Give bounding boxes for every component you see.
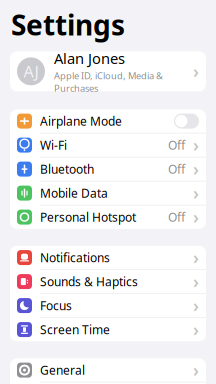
staticText: › xyxy=(193,182,199,205)
button[interactable]: Mobile Data xyxy=(10,181,206,205)
button[interactable]: Bluetooth xyxy=(10,157,206,181)
staticText: Notifications xyxy=(40,250,110,265)
button[interactable]: General xyxy=(10,358,206,382)
staticText: › xyxy=(193,246,199,269)
staticText: Off xyxy=(168,161,185,177)
button[interactable]: Personal Hotspot xyxy=(10,205,206,229)
staticText: › xyxy=(193,158,199,181)
staticText: Mobile Data xyxy=(40,185,108,201)
staticText: › xyxy=(193,134,199,157)
staticText: Off xyxy=(168,209,185,225)
button[interactable]: Screen Time xyxy=(10,318,206,341)
staticText: Apple ID, iCloud, Media & Purchases xyxy=(54,69,163,94)
button[interactable]: AJ xyxy=(0,51,216,91)
staticText: Alan Jones xyxy=(54,48,125,68)
button[interactable]: Control Centre xyxy=(10,382,206,384)
staticText: Focus xyxy=(40,298,72,313)
staticText: Screen Time xyxy=(40,322,110,337)
staticText: › xyxy=(193,270,199,293)
staticText: Wi-Fi xyxy=(40,137,67,153)
staticText: › xyxy=(193,359,199,382)
staticText: › xyxy=(193,294,199,317)
staticText: Off xyxy=(168,137,185,153)
staticText: Airplane Mode xyxy=(40,113,122,129)
staticText: Personal Hotspot xyxy=(40,209,136,225)
staticText: Bluetooth xyxy=(40,161,94,177)
button[interactable]: Airplane Mode xyxy=(10,109,206,133)
staticText: General xyxy=(40,362,85,378)
staticText: Sounds & Haptics xyxy=(40,274,138,289)
button[interactable]: Sounds & Haptics xyxy=(10,270,206,294)
button[interactable]: Notifications xyxy=(10,246,206,270)
staticText: › xyxy=(193,206,199,229)
staticText: Settings xyxy=(11,6,125,43)
button[interactable]: Focus xyxy=(10,294,206,318)
staticText: › xyxy=(193,60,199,83)
button[interactable]: Wi-Fi xyxy=(10,133,206,157)
staticText: › xyxy=(193,318,199,341)
staticText: AJ xyxy=(23,61,38,82)
